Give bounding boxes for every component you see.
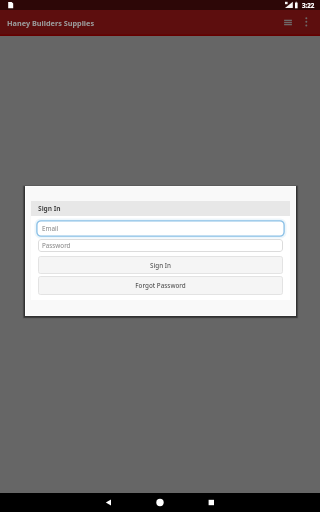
button[interactable]: Email — [38, 222, 283, 235]
button[interactable]: Recent apps — [191, 493, 231, 512]
button[interactable]: Password — [38, 239, 283, 252]
staticText: Sign In — [150, 261, 171, 270]
staticText: Password — [42, 241, 71, 250]
button[interactable]: Forgot Password — [38, 276, 283, 295]
staticText: 3:22 — [302, 1, 315, 9]
staticText: Forgot Password — [135, 281, 186, 290]
staticText: Haney Builders Supplies — [7, 18, 95, 28]
button[interactable]: More options — [299, 10, 320, 36]
staticText: Sign In — [38, 204, 61, 213]
button[interactable]: Menu — [277, 10, 299, 36]
button[interactable]: Home — [140, 493, 180, 512]
button[interactable]: Back — [88, 493, 128, 512]
staticText: Email — [42, 224, 59, 233]
button[interactable]: Sign In — [38, 256, 283, 274]
